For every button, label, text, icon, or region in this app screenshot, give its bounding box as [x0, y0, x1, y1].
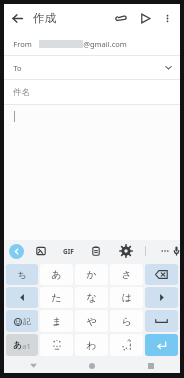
- button[interactable]: Back: [4, 358, 62, 373]
- button[interactable]: Attach file: [110, 7, 132, 29]
- button[interactable]: Emoticons: [40, 334, 73, 356]
- staticText: な: [86, 291, 97, 304]
- button[interactable]: To: [4, 56, 180, 79]
- button[interactable]: た: [40, 287, 73, 308]
- button[interactable]: Punctuation: [110, 334, 143, 356]
- staticText: や: [86, 315, 97, 328]
- button[interactable]: な: [75, 287, 108, 308]
- staticText: か: [86, 268, 97, 281]
- button[interactable]: わ: [75, 334, 108, 356]
- button[interactable]: 件名: [4, 80, 180, 104]
- button[interactable]: Move cursor left: [6, 287, 38, 308]
- staticText: ち: [17, 269, 27, 280]
- staticText: GIF: [63, 247, 74, 256]
- button[interactable]: Back: [4, 5, 30, 31]
- button[interactable]: Stickers: [33, 243, 49, 259]
- staticText: は: [121, 291, 132, 304]
- staticText: わ: [86, 339, 97, 352]
- button[interactable]: Move cursor right: [145, 287, 178, 308]
- staticText: あ: [51, 268, 62, 281]
- staticText: ま: [51, 315, 62, 328]
- button[interactable]: や: [75, 310, 108, 332]
- button[interactable]: Collapse toolbar: [9, 244, 24, 259]
- button[interactable]: Delete: [145, 264, 178, 285]
- staticText: @gmail.com: [83, 39, 127, 49]
- staticText: 記: [23, 317, 31, 326]
- button[interactable]: は: [110, 287, 143, 308]
- staticText: さ: [121, 268, 132, 281]
- button[interactable]: Home: [62, 358, 121, 373]
- staticText: To: [13, 63, 22, 73]
- staticText: あ: [13, 340, 22, 351]
- button[interactable]: From: [4, 32, 180, 55]
- button[interactable]: Voice input: [173, 243, 180, 259]
- button[interactable]: か: [75, 264, 108, 285]
- button[interactable]: Settings: [118, 243, 134, 259]
- button[interactable]: さ: [110, 264, 143, 285]
- button[interactable]: ち: [6, 264, 38, 285]
- button[interactable]: ら: [110, 310, 143, 332]
- button[interactable]: Switch input mode: [6, 334, 38, 356]
- staticText: ら: [121, 315, 132, 328]
- button[interactable]: Send: [134, 7, 156, 29]
- button[interactable]: More: [157, 243, 173, 259]
- staticText: 作成: [33, 11, 56, 25]
- button[interactable]: GIF: [62, 242, 75, 260]
- button[interactable]: Enter: [145, 334, 178, 356]
- staticText: 件名: [13, 87, 30, 98]
- button[interactable]: More options: [157, 8, 177, 28]
- button[interactable]: Emoji and symbols: [6, 310, 38, 332]
- button[interactable]: Space: [145, 310, 178, 332]
- button[interactable]: ま: [40, 310, 73, 332]
- staticText: た: [51, 291, 62, 304]
- staticText: From: [13, 39, 32, 49]
- staticText: a1: [22, 341, 31, 351]
- button[interactable]: あ: [40, 264, 73, 285]
- button[interactable]: Clipboard: [88, 243, 104, 259]
- button[interactable]: Recent apps: [121, 358, 180, 373]
